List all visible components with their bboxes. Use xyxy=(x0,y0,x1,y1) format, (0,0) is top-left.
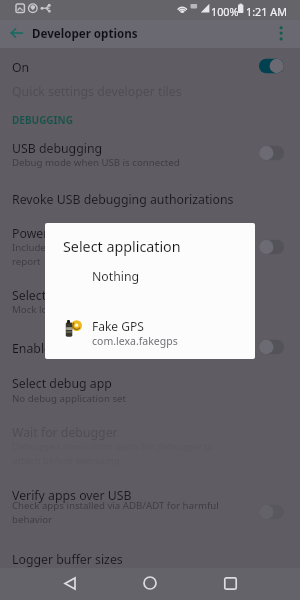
button[interactable]: Navigate up xyxy=(3,20,31,48)
button[interactable] xyxy=(0,543,300,571)
staticText: Logger buffer sizes xyxy=(12,551,123,568)
button[interactable] xyxy=(0,179,300,207)
button[interactable] xyxy=(0,133,300,173)
staticText: Developer options xyxy=(32,26,138,42)
button[interactable]: Back xyxy=(55,568,85,598)
button[interactable]: Toggle xyxy=(258,338,288,356)
button[interactable] xyxy=(0,48,300,74)
button[interactable] xyxy=(0,217,300,269)
staticText: USB debugging xyxy=(12,140,103,157)
button[interactable]: Toggle xyxy=(258,57,288,75)
staticText: com.lexa.fakegps xyxy=(92,334,178,348)
button[interactable]: Toggle xyxy=(258,144,288,162)
staticText: Fake GPS xyxy=(92,318,144,334)
button[interactable]: Toggle xyxy=(258,238,288,256)
staticText: On xyxy=(12,59,30,76)
button[interactable] xyxy=(0,74,300,100)
staticText: Debug mode when USB is connected xyxy=(12,156,260,169)
button[interactable]: Recents xyxy=(215,568,245,598)
staticText: Check apps installed via ADB/ADT for har… xyxy=(12,499,260,526)
staticText: Revoke USB debugging authorizations xyxy=(12,191,234,208)
button[interactable] xyxy=(0,367,300,407)
button[interactable] xyxy=(0,481,300,533)
staticText: 1:21 AM xyxy=(246,4,287,19)
staticText: 100% xyxy=(211,4,239,19)
button[interactable] xyxy=(0,281,300,321)
button[interactable]: Home xyxy=(135,568,165,598)
staticText: Nothing xyxy=(92,268,140,285)
button[interactable]: Nothing xyxy=(45,263,255,293)
staticText: Select debug app xyxy=(12,375,112,392)
staticText: Select application xyxy=(63,237,181,256)
staticText: Verify apps over USB xyxy=(12,487,132,504)
staticText: No debug application set xyxy=(12,392,260,405)
staticText: Quick settings developer tiles xyxy=(12,83,182,100)
button[interactable]: Toggle xyxy=(258,503,288,521)
staticText: Power menu bug reports xyxy=(12,225,157,242)
button[interactable]: Fake GPS xyxy=(45,313,255,357)
button[interactable]: More options xyxy=(274,20,300,48)
staticText: Select mock location app xyxy=(12,287,156,304)
button[interactable] xyxy=(0,329,300,361)
staticText: Include option in power menu for taking … xyxy=(12,241,260,268)
staticText: Mock location app: none xyxy=(12,303,260,316)
staticText: DEBUGGING xyxy=(12,113,73,127)
staticText: Enable view attribute inspection xyxy=(12,340,197,357)
staticText: Wait for debugger xyxy=(12,424,118,441)
